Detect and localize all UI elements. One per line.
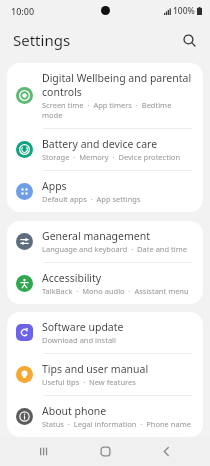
staticText: Digital Wellbeing and parental controls xyxy=(42,71,193,99)
button[interactable]: Recent apps xyxy=(27,437,61,466)
staticText: Screen time · App timers · Bedtime mode xyxy=(42,100,193,120)
staticText: About phone xyxy=(42,404,107,418)
button[interactable]: Tips and user manual xyxy=(7,354,203,395)
button[interactable]: Battery and device care xyxy=(7,129,203,170)
staticText: Software update xyxy=(42,320,124,334)
staticText: Storage · Memory · Device protection xyxy=(42,152,181,162)
button[interactable]: General management xyxy=(7,221,203,262)
staticText: TalkBack · Mono audio · Assistant menu xyxy=(42,286,189,296)
staticText: Settings xyxy=(13,30,71,50)
staticText: 10:00 xyxy=(11,5,35,17)
button[interactable]: Software update xyxy=(7,312,203,353)
button[interactable]: Home xyxy=(88,437,122,466)
button[interactable]: Search xyxy=(176,27,202,53)
staticText: Default apps · App settings xyxy=(42,194,141,204)
staticText: Apps xyxy=(42,179,67,193)
button[interactable]: About phone xyxy=(7,396,203,437)
staticText: Download and install xyxy=(42,335,116,345)
staticText: General management xyxy=(42,229,150,243)
staticText: Accessibility xyxy=(42,271,102,285)
staticText: 100% xyxy=(173,5,195,17)
staticText: Battery and device care xyxy=(42,137,158,151)
button[interactable]: Back xyxy=(149,437,183,466)
staticText: Status · Legal information · Phone name xyxy=(42,419,191,429)
button[interactable]: Apps xyxy=(7,171,203,212)
button[interactable]: Digital Wellbeing and parental controls xyxy=(7,63,203,128)
button[interactable]: Accessibility xyxy=(7,263,203,304)
staticText: Useful tips · New features xyxy=(42,377,136,387)
staticText: Language and keyboard · Date and time xyxy=(42,244,187,254)
staticText: Tips and user manual xyxy=(42,362,149,376)
